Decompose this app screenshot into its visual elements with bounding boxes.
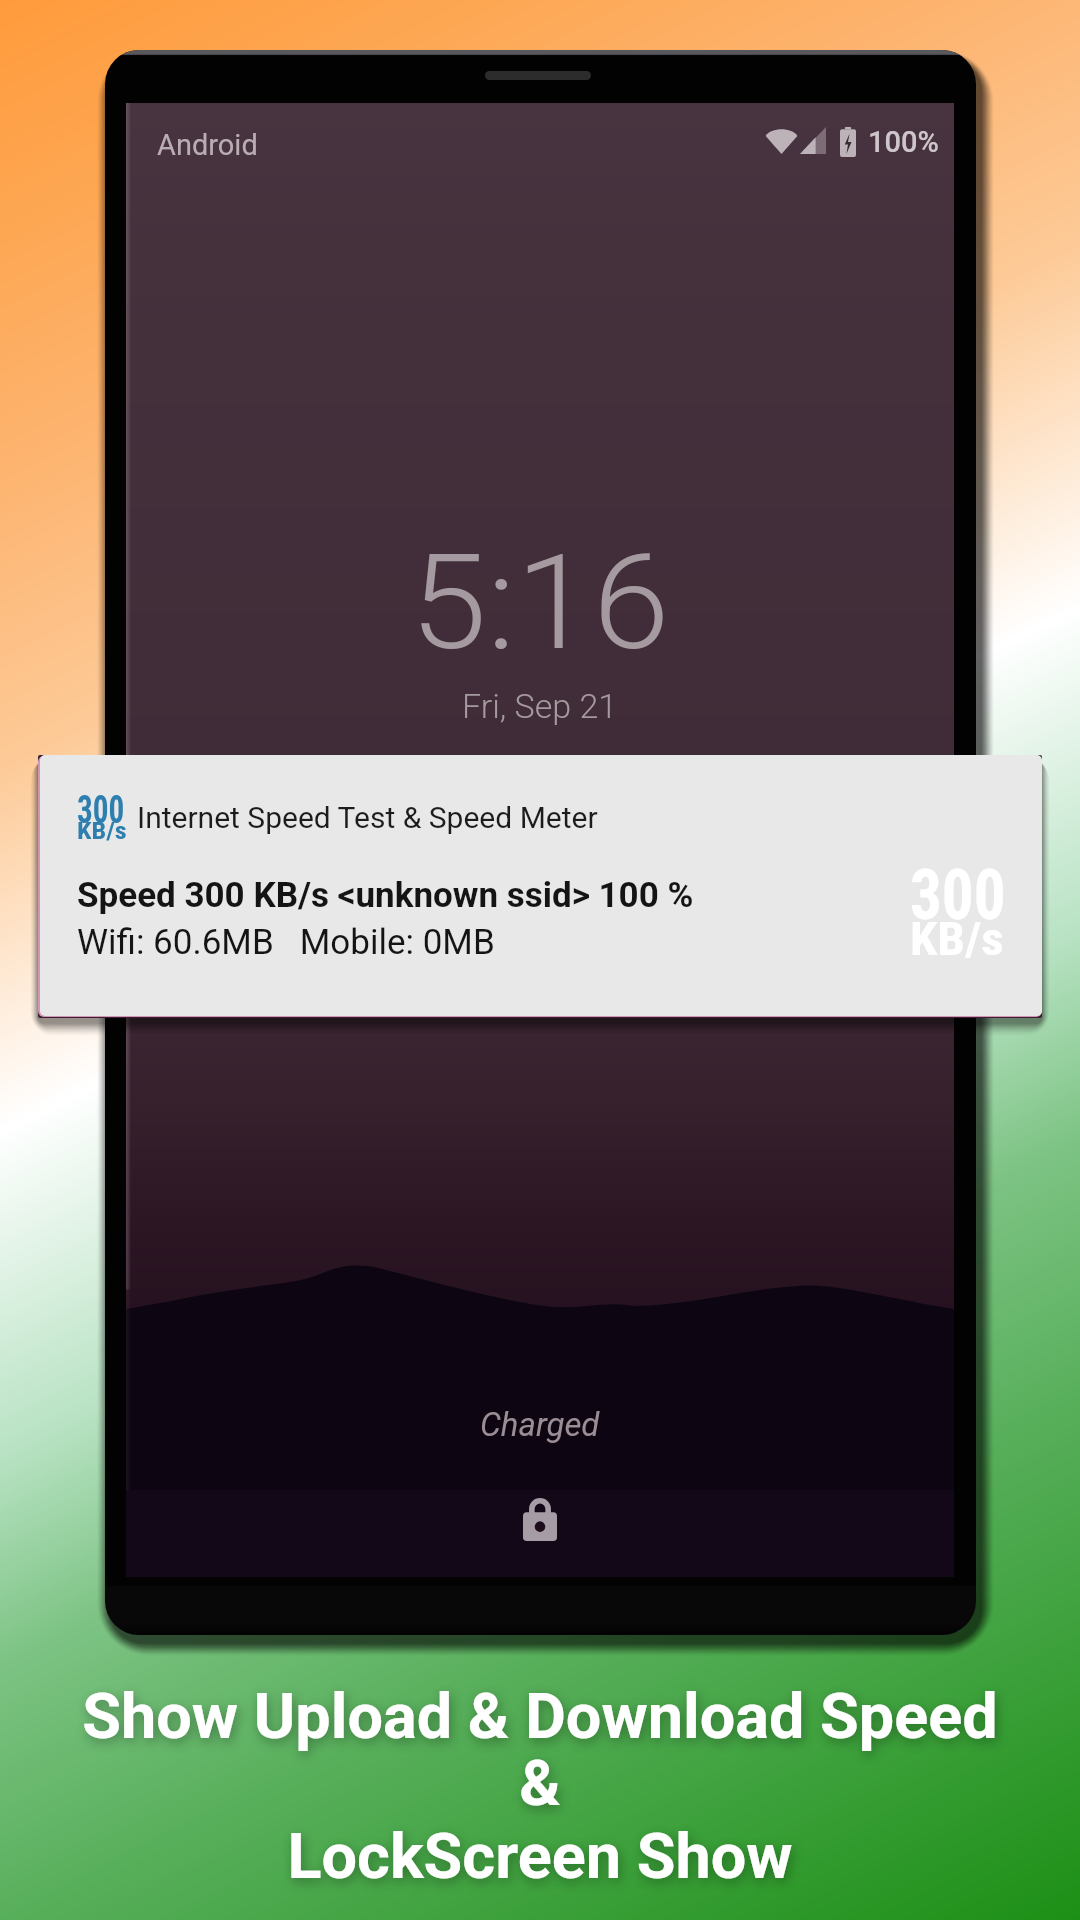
staticText: KB/s — [910, 911, 1004, 966]
staticText: Wifi: 60.6MB Mobile: 0MB — [77, 922, 495, 963]
button[interactable]: Unlock — [506, 1485, 574, 1553]
staticText: & — [0, 1747, 1080, 1821]
staticText: 5:16 — [410, 526, 670, 680]
staticText: LockScreen Show — [0, 1820, 1080, 1894]
button[interactable]: 300 — [40, 755, 1042, 1016]
staticText: KB/s — [77, 817, 127, 845]
staticText: Internet Speed Test & Speed Meter — [137, 800, 598, 835]
staticText: Android — [157, 128, 258, 162]
staticText: 100% — [868, 125, 939, 159]
staticText: Speed 300 KB/s <unknown ssid> 100 % — [77, 875, 694, 916]
staticText: Fri, Sep 21 — [462, 686, 618, 726]
staticText: Show Upload & Download Speed — [0, 1680, 1080, 1754]
staticText: 300 — [77, 787, 125, 833]
staticText: Charged — [480, 1405, 600, 1444]
staticText: 300 — [910, 854, 1006, 936]
